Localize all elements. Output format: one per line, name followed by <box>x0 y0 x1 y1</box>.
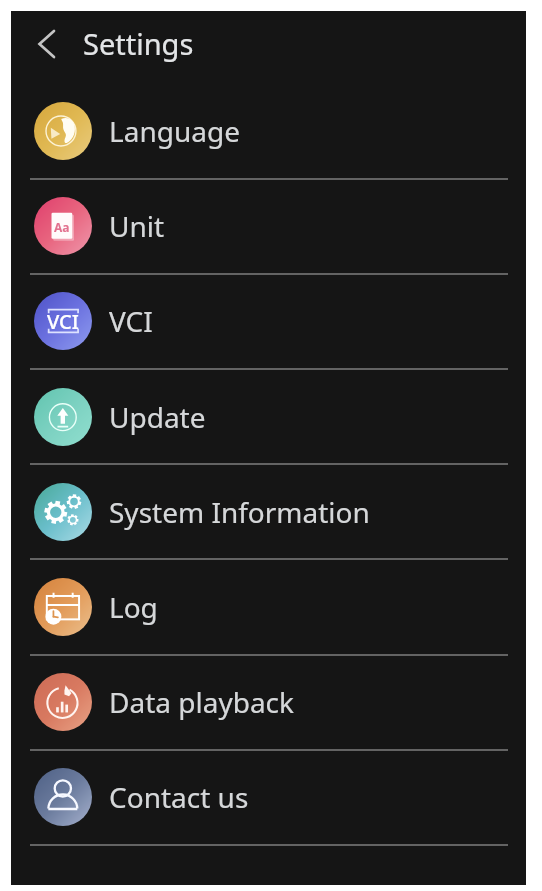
staticText: Data playback <box>109 683 294 721</box>
button[interactable]: Update <box>11 369 526 464</box>
button[interactable]: System Information <box>11 464 526 559</box>
staticText: VCI <box>47 308 79 335</box>
button[interactable]: Contact us <box>11 749 526 844</box>
button[interactable]: Aa <box>11 178 526 273</box>
staticText: Contact us <box>109 778 249 816</box>
staticText: Update <box>109 398 206 436</box>
staticText: Unit <box>109 207 165 245</box>
staticText: System Information <box>109 493 370 531</box>
staticText: Settings <box>83 24 194 63</box>
button[interactable]: Back <box>27 24 67 64</box>
button[interactable]: VCI <box>11 273 526 368</box>
staticText: Aa <box>54 219 70 235</box>
button[interactable]: Data playback <box>11 654 526 749</box>
staticText: VCI <box>109 302 153 340</box>
staticText: Language <box>109 112 240 150</box>
staticText: Log <box>109 588 158 626</box>
button[interactable]: Language <box>11 83 526 178</box>
button[interactable]: Log <box>11 559 526 654</box>
